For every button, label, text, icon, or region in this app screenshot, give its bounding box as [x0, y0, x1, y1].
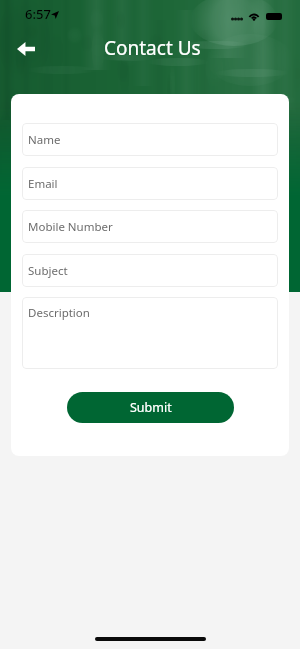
staticText: 6:57: [25, 5, 51, 23]
button[interactable]: Submit: [67, 392, 234, 423]
staticText: Email: [28, 176, 58, 192]
staticText: Submit: [130, 399, 172, 416]
staticText: Mobile Number: [28, 219, 113, 235]
button[interactable]: Subject: [22, 254, 278, 287]
button[interactable]: Name: [22, 123, 278, 156]
button[interactable]: Back: [6, 29, 46, 69]
button[interactable]: Description: [22, 297, 278, 369]
staticText: Contact Us: [104, 35, 201, 61]
staticText: Name: [28, 132, 61, 148]
staticText: Description: [28, 305, 90, 321]
button[interactable]: Mobile Number: [22, 210, 278, 243]
staticText: Subject: [28, 263, 68, 279]
button[interactable]: Email: [22, 167, 278, 200]
